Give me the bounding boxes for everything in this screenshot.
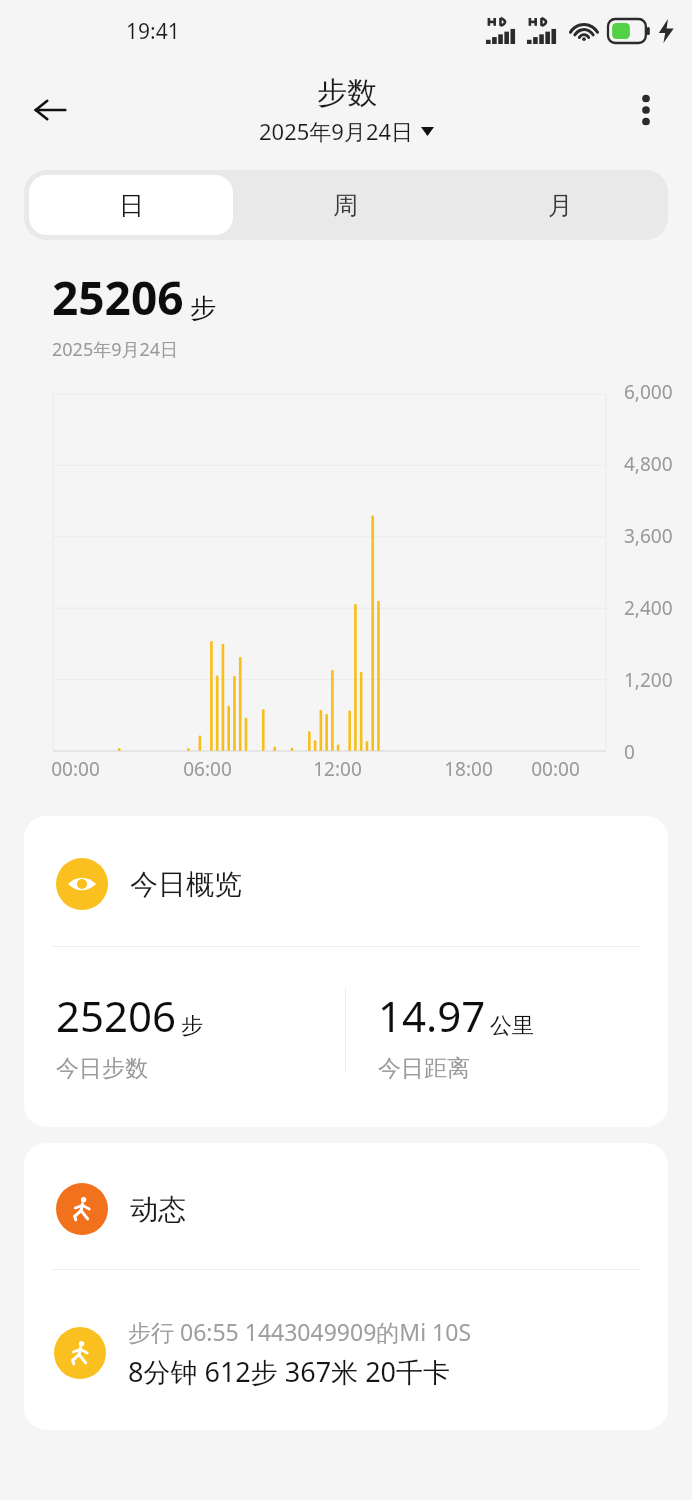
staticText: 0 (624, 739, 635, 765)
staticText: 动态 (130, 1192, 186, 1227)
button[interactable]: 日 (29, 175, 233, 235)
button[interactable]: 月 (458, 175, 663, 235)
staticText: 19:41 (126, 17, 180, 46)
staticText: 今日步数 (56, 1054, 148, 1083)
staticText: 步行 06:55 1443049909的Mi 10S (128, 1316, 472, 1347)
staticText: 日 (119, 190, 144, 221)
staticText: 1,200 (624, 667, 673, 693)
staticText: 00:00 (51, 756, 100, 782)
staticText: 2,400 (624, 595, 673, 621)
button[interactable]: 周 (243, 175, 448, 235)
staticText: 今日距离 (378, 1054, 470, 1083)
staticText: 步 (190, 292, 216, 325)
staticText: 3,600 (624, 523, 673, 549)
staticText: 周 (333, 190, 358, 221)
staticText: 18:00 (444, 756, 493, 782)
staticText: 8分钟 612步 367米 20千卡 (128, 1353, 451, 1390)
staticText: 14.97 (378, 987, 486, 1044)
staticText: 2025年9月24日 (259, 116, 414, 146)
button[interactable]: Back (22, 82, 78, 138)
staticText: 6,000 (624, 379, 673, 405)
staticText: 06:00 (183, 756, 232, 782)
staticText: 4,800 (624, 451, 673, 477)
button[interactable]: More options (620, 84, 672, 136)
staticText: 25206 (56, 987, 177, 1044)
staticText: 步 (181, 1012, 203, 1040)
staticText: 公里 (490, 1012, 534, 1040)
button[interactable]: 步行 06:55 1443049909的Mi 10S (54, 1316, 668, 1390)
button[interactable]: 2025年9月24日 (259, 116, 434, 146)
staticText: 今日概览 (130, 867, 242, 902)
staticText: 步数 (317, 74, 377, 112)
staticText: 2025年9月24日 (52, 337, 179, 362)
staticText: 12:00 (313, 756, 362, 782)
staticText: 月 (548, 190, 573, 221)
button[interactable]: 动态 (24, 1143, 668, 1430)
button[interactable]: 今日概览 (24, 816, 668, 1127)
staticText: 25206 (52, 266, 184, 329)
staticText: 00:00 (531, 756, 580, 782)
